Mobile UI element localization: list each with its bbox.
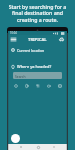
button[interactable]: Create route	[11, 134, 20, 143]
staticText: Start by searching for a final destinati…	[4, 3, 71, 24]
button[interactable]: Search	[13, 72, 62, 79]
button[interactable]: Fuel	[23, 82, 30, 89]
staticText: 10:04	[10, 31, 17, 35]
button[interactable]: Open navigation menu	[10, 36, 17, 43]
staticText: TRIPICAL	[28, 37, 47, 43]
staticText: Search	[15, 74, 26, 78]
button[interactable]: Back	[18, 144, 24, 150]
button[interactable]: Current location	[8, 46, 67, 54]
button[interactable]: Home	[35, 144, 41, 150]
button[interactable]: Recent apps	[51, 144, 57, 150]
button[interactable]: Nearby	[12, 82, 19, 89]
staticText: Current location	[17, 48, 45, 53]
button[interactable]: Vehicle settings	[58, 36, 65, 43]
staticText: Where ya headed?	[17, 64, 52, 69]
button[interactable]: Lodging	[56, 82, 63, 89]
button[interactable]: Coffee	[45, 82, 52, 89]
button[interactable]: Food	[34, 82, 41, 89]
